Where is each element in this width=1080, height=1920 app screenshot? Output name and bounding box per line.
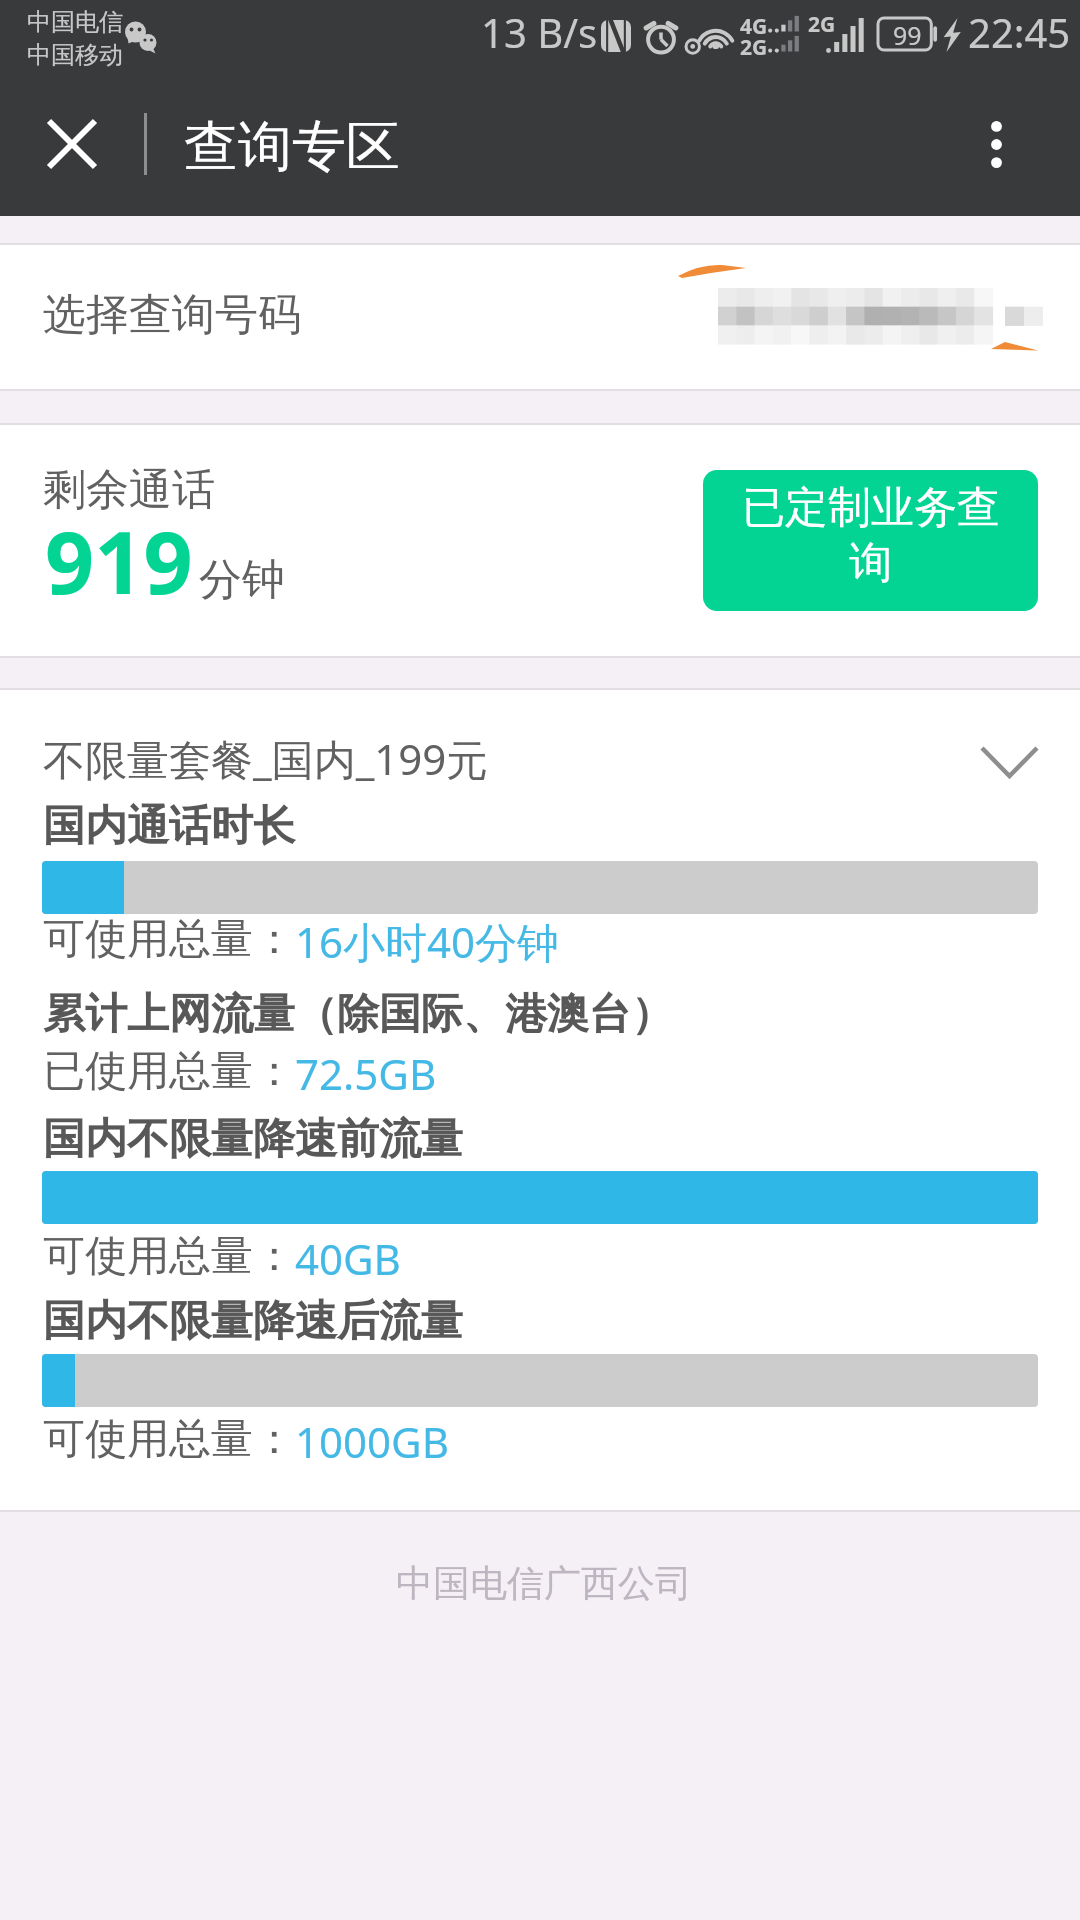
staticText: 国内不限量降速后流量 [43, 1295, 463, 1348]
staticText: 已使用总量： [43, 1045, 295, 1098]
button[interactable]: Collapse [960, 720, 1058, 804]
staticText: 2G [808, 10, 836, 39]
staticText: 累计上网流量（除国际、港澳台） [43, 988, 673, 1041]
staticText: 选择查询号码 [43, 288, 301, 342]
staticText: 国内通话时长 [43, 800, 295, 853]
staticText: 可使用总量： [43, 1230, 295, 1283]
staticText: 查询专区 [184, 113, 400, 181]
staticText: 剩余通话 [43, 463, 215, 517]
staticText: 40GB [295, 1230, 401, 1287]
staticText: 72.5GB [295, 1045, 437, 1102]
staticText: 中国电信 [27, 7, 123, 37]
staticText: 中国电信广西公司 [396, 1560, 692, 1607]
button[interactable]: 选择查询号码 [0, 245, 1080, 390]
staticText: 4G [740, 12, 768, 41]
staticText: 中国移动 [27, 40, 123, 70]
staticText: 13 B/s [481, 5, 598, 59]
button[interactable]: 已定制业务查询 [703, 470, 1038, 611]
staticText: 国内不限量降速前流量 [43, 1113, 463, 1166]
staticText: 16小时40分钟 [295, 913, 560, 970]
staticText: 2G [740, 33, 768, 62]
staticText: 可使用总量： [43, 913, 295, 966]
staticText: 可使用总量： [43, 1413, 295, 1466]
staticText: 99 [893, 18, 922, 52]
button[interactable]: Close [27, 99, 117, 189]
button[interactable]: More options [951, 99, 1041, 189]
staticText: 分钟 [199, 553, 285, 607]
staticText: 22:45 [968, 5, 1071, 59]
staticText: 1000GB [295, 1413, 449, 1470]
staticText: 919 [45, 502, 193, 619]
staticText: 不限量套餐_国内_199元 [43, 730, 489, 787]
staticText: 已定制业务查询 [740, 481, 1002, 590]
